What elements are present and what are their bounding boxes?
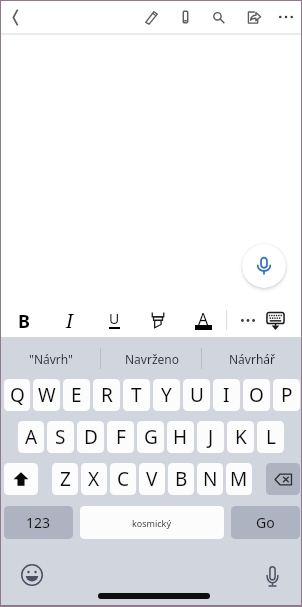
- button[interactable]: Navrženo: [101, 337, 202, 381]
- staticText: U: [190, 382, 204, 408]
- staticText: H: [173, 424, 188, 450]
- staticText: Q: [10, 382, 25, 408]
- button[interactable]: Bold: [7, 303, 41, 337]
- button[interactable]: 123: [4, 506, 73, 539]
- button[interactable]: I: [213, 379, 240, 411]
- staticText: E: [71, 382, 82, 408]
- button[interactable]: C: [110, 463, 136, 495]
- button[interactable]: E: [63, 379, 90, 411]
- button[interactable]: More options: [271, 2, 301, 32]
- button[interactable]: Hide keyboard: [258, 303, 292, 337]
- button[interactable]: T: [123, 379, 150, 411]
- button[interactable]: B: [168, 463, 194, 495]
- button[interactable]: X: [81, 463, 107, 495]
- button[interactable]: J: [197, 421, 224, 453]
- button[interactable]: M: [226, 463, 252, 495]
- staticText: B: [175, 466, 188, 492]
- staticText: X: [88, 466, 100, 492]
- staticText: R: [101, 382, 113, 408]
- button[interactable]: More formatting: [231, 303, 265, 337]
- button[interactable]: G: [137, 421, 164, 453]
- button[interactable]: O: [243, 379, 270, 411]
- button[interactable]: Shift: [4, 463, 38, 495]
- button[interactable]: Emoji: [16, 559, 48, 591]
- staticText: B: [18, 309, 30, 334]
- staticText: V: [146, 466, 158, 492]
- button[interactable]: Návrhář: [202, 337, 302, 381]
- button[interactable]: Voice input: [256, 560, 288, 592]
- staticText: Go: [256, 513, 275, 532]
- staticText: J: [208, 424, 214, 450]
- staticText: 123: [26, 513, 51, 532]
- staticText: W: [38, 382, 56, 408]
- staticText: S: [55, 424, 66, 450]
- staticText: Z: [60, 466, 71, 492]
- button[interactable]: Z: [52, 463, 78, 495]
- button[interactable]: S: [47, 421, 74, 453]
- staticText: U: [109, 309, 120, 327]
- staticText: L: [266, 424, 276, 450]
- button[interactable]: R: [93, 379, 120, 411]
- button[interactable]: kosmický: [80, 506, 224, 539]
- button[interactable]: Y: [153, 379, 180, 411]
- staticText: A: [25, 424, 38, 450]
- button[interactable]: Search: [203, 2, 233, 32]
- button[interactable]: Underline: [97, 303, 131, 337]
- button[interactable]: Italic: [52, 303, 86, 337]
- staticText: kosmický: [132, 517, 172, 529]
- button[interactable]: H: [167, 421, 194, 453]
- staticText: T: [131, 382, 142, 408]
- button[interactable]: A: [18, 421, 44, 453]
- staticText: M: [230, 466, 248, 492]
- button[interactable]: "Návrh": [0, 337, 101, 381]
- staticText: "Návrh": [29, 351, 73, 367]
- button[interactable]: Go: [231, 506, 300, 539]
- button[interactable]: K: [227, 421, 254, 453]
- staticText: C: [117, 466, 130, 492]
- button[interactable]: Edit: [136, 2, 166, 32]
- staticText: I: [223, 382, 230, 408]
- button[interactable]: D: [77, 421, 104, 453]
- staticText: O: [249, 382, 264, 408]
- button[interactable]: V: [139, 463, 165, 495]
- staticText: P: [281, 382, 293, 408]
- staticText: K: [235, 424, 247, 450]
- staticText: D: [84, 424, 98, 450]
- button[interactable]: Highlight: [141, 303, 175, 337]
- button[interactable]: Font color: [186, 303, 220, 337]
- button[interactable]: Dictate: [242, 244, 286, 288]
- staticText: Y: [161, 382, 172, 408]
- staticText: Navrženo: [125, 351, 179, 367]
- button[interactable]: N: [197, 463, 223, 495]
- staticText: G: [144, 424, 158, 450]
- button[interactable]: Share: [238, 2, 268, 32]
- button[interactable]: U: [183, 379, 210, 411]
- staticText: F: [116, 424, 126, 450]
- button[interactable]: W: [33, 379, 60, 411]
- staticText: A: [198, 308, 209, 327]
- button[interactable]: Q: [4, 379, 30, 411]
- button[interactable]: Back: [0, 2, 30, 32]
- button[interactable]: F: [107, 421, 134, 453]
- staticText: N: [203, 466, 218, 492]
- button[interactable]: Phone view: [170, 2, 200, 32]
- button[interactable]: L: [257, 421, 284, 453]
- button[interactable]: Backspace: [266, 463, 300, 495]
- staticText: Návrhář: [229, 351, 276, 367]
- button[interactable]: P: [273, 379, 300, 411]
- staticText: I: [66, 308, 73, 334]
